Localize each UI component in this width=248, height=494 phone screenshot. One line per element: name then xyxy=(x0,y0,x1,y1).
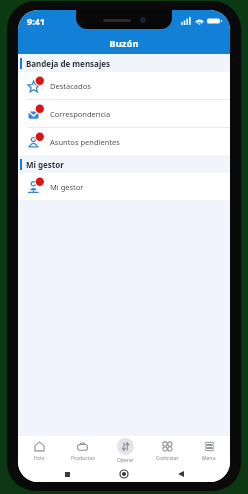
staticText: Menu xyxy=(202,455,216,462)
button[interactable]: Asuntos pendientes xyxy=(18,128,230,155)
button[interactable]: Home xyxy=(116,466,132,482)
button[interactable]: Back xyxy=(173,466,189,482)
staticText: Contratar xyxy=(156,455,179,462)
staticText: 9:41 xyxy=(27,15,45,27)
button[interactable]: Mi gestor xyxy=(18,173,230,200)
staticText: Asuntos pendientes xyxy=(50,137,120,147)
button[interactable]: Contratar xyxy=(146,436,188,466)
button[interactable]: Productos xyxy=(61,436,104,466)
button[interactable]: Recent apps xyxy=(59,466,75,482)
button[interactable]: Operar xyxy=(104,436,146,466)
staticText: Destacados xyxy=(50,81,91,91)
staticText: Operar xyxy=(117,457,134,464)
staticText: Bandeja de mensajes xyxy=(26,58,111,69)
button[interactable]: Destacados xyxy=(18,72,230,99)
staticText: Mi gestor xyxy=(26,159,64,170)
staticText: Hcio xyxy=(34,455,45,462)
staticText: Correspondencia xyxy=(50,109,111,119)
staticText: Mi gestor xyxy=(50,182,84,192)
button[interactable]: Hcio xyxy=(18,436,61,466)
staticText: Productos xyxy=(71,455,95,462)
button[interactable]: Menu xyxy=(188,436,230,466)
button[interactable]: Correspondencia xyxy=(18,100,230,127)
staticText: Buzón xyxy=(109,37,139,50)
